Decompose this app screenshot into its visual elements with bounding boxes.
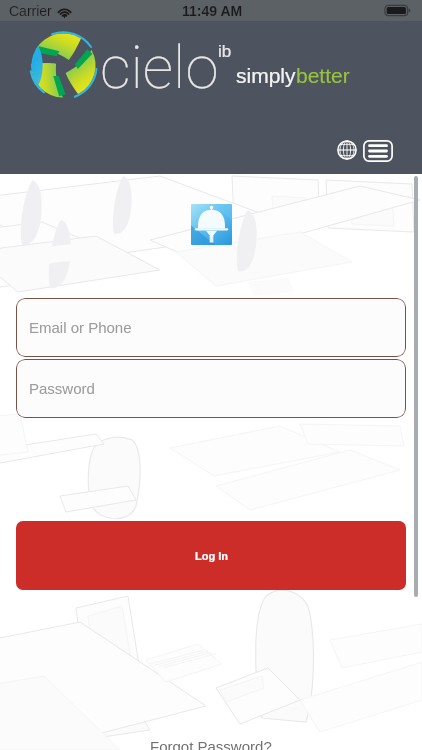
staticText: cielo [100,32,219,102]
staticText: 11:49 AM [182,3,243,19]
staticText: Carrier [9,3,52,19]
button[interactable]: Menu [361,138,394,163]
staticText: Password [29,380,95,397]
button[interactable]: Language [333,136,361,164]
staticText: better [296,64,350,87]
button[interactable]: Room service app icon [191,204,232,245]
button[interactable]: Log In [16,521,406,590]
button[interactable]: Forgot Password? [150,738,272,750]
button[interactable]: Email or Phone [16,298,406,357]
staticText: Email or Phone [29,319,132,336]
button[interactable]: Password [16,359,406,418]
staticText: ib [218,42,232,61]
staticText: simply [236,64,296,87]
staticText: Log In [195,550,228,562]
